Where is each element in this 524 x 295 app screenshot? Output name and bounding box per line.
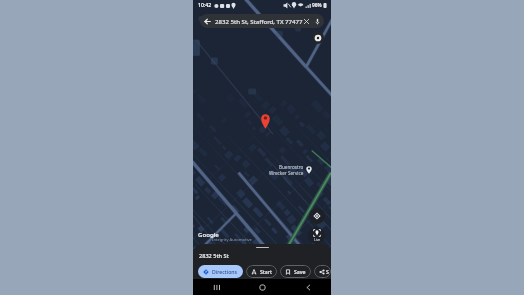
- button[interactable]: My location: [309, 208, 325, 224]
- button[interactable]: Back: [300, 279, 316, 295]
- staticText: Start: [260, 268, 272, 275]
- button[interactable]: Save: [280, 265, 311, 278]
- staticText: Google: [198, 230, 219, 238]
- staticText: 10:42: [198, 2, 212, 9]
- staticText: Buenrostro: [279, 164, 304, 170]
- staticText: Directions: [212, 268, 238, 275]
- staticText: 2832 5th St: [199, 252, 229, 260]
- other: Clear: [303, 18, 310, 25]
- staticText: Live: [314, 237, 321, 242]
- staticText: Integrity Automotive: [212, 237, 252, 243]
- button[interactable]: Share: [314, 265, 331, 278]
- button[interactable]: Directions: [198, 265, 243, 278]
- staticText: Wrecker Service: [269, 170, 304, 176]
- other: Voice search: [315, 18, 320, 25]
- staticText: Save: [294, 268, 306, 275]
- staticText: 2832 5th St, Stafford, TX 77477: [215, 17, 303, 25]
- button[interactable]: Home: [254, 279, 270, 295]
- button[interactable]: Start: [246, 265, 277, 278]
- button[interactable]: Recent apps: [208, 279, 224, 295]
- staticText: 96%: [312, 2, 322, 9]
- button[interactable]: Live view: [308, 227, 325, 244]
- other: Back: [204, 18, 211, 25]
- button[interactable]: Back: [200, 14, 324, 28]
- button[interactable]: Map layers: [311, 31, 324, 44]
